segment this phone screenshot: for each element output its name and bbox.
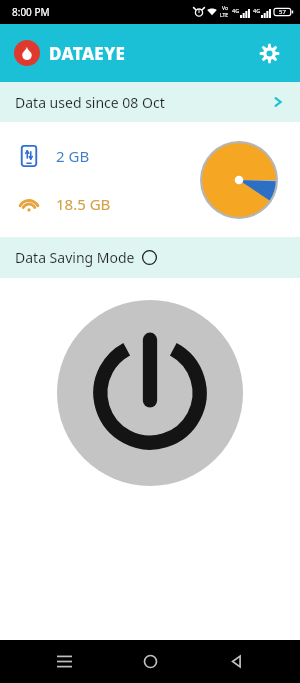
staticText: Data Saving Mode — [15, 248, 135, 267]
button[interactable]: Data used since 08 Oct — [0, 82, 300, 122]
button[interactable]: 2 GB — [0, 122, 300, 237]
button[interactable]: Back — [214, 640, 258, 683]
staticText: 8:00 PM — [12, 5, 50, 19]
button[interactable]: Data Saving Mode — [0, 237, 300, 278]
staticText: Data used since 08 Oct — [15, 93, 165, 112]
staticText: 57 — [279, 8, 286, 16]
staticText: LTE — [220, 12, 229, 19]
button[interactable]: Settings — [252, 36, 286, 70]
staticText: DATAEYE — [49, 42, 126, 65]
staticText: Vo — [222, 5, 228, 12]
button[interactable]: Toggle data saving mode — [57, 300, 243, 486]
staticText: 18.5 GB — [56, 194, 111, 214]
staticText: 4G — [253, 7, 261, 14]
staticText: 4G — [232, 7, 240, 14]
staticText: 2 GB — [56, 146, 90, 166]
button[interactable]: Home — [128, 640, 172, 683]
button[interactable]: Recent apps — [42, 640, 86, 683]
